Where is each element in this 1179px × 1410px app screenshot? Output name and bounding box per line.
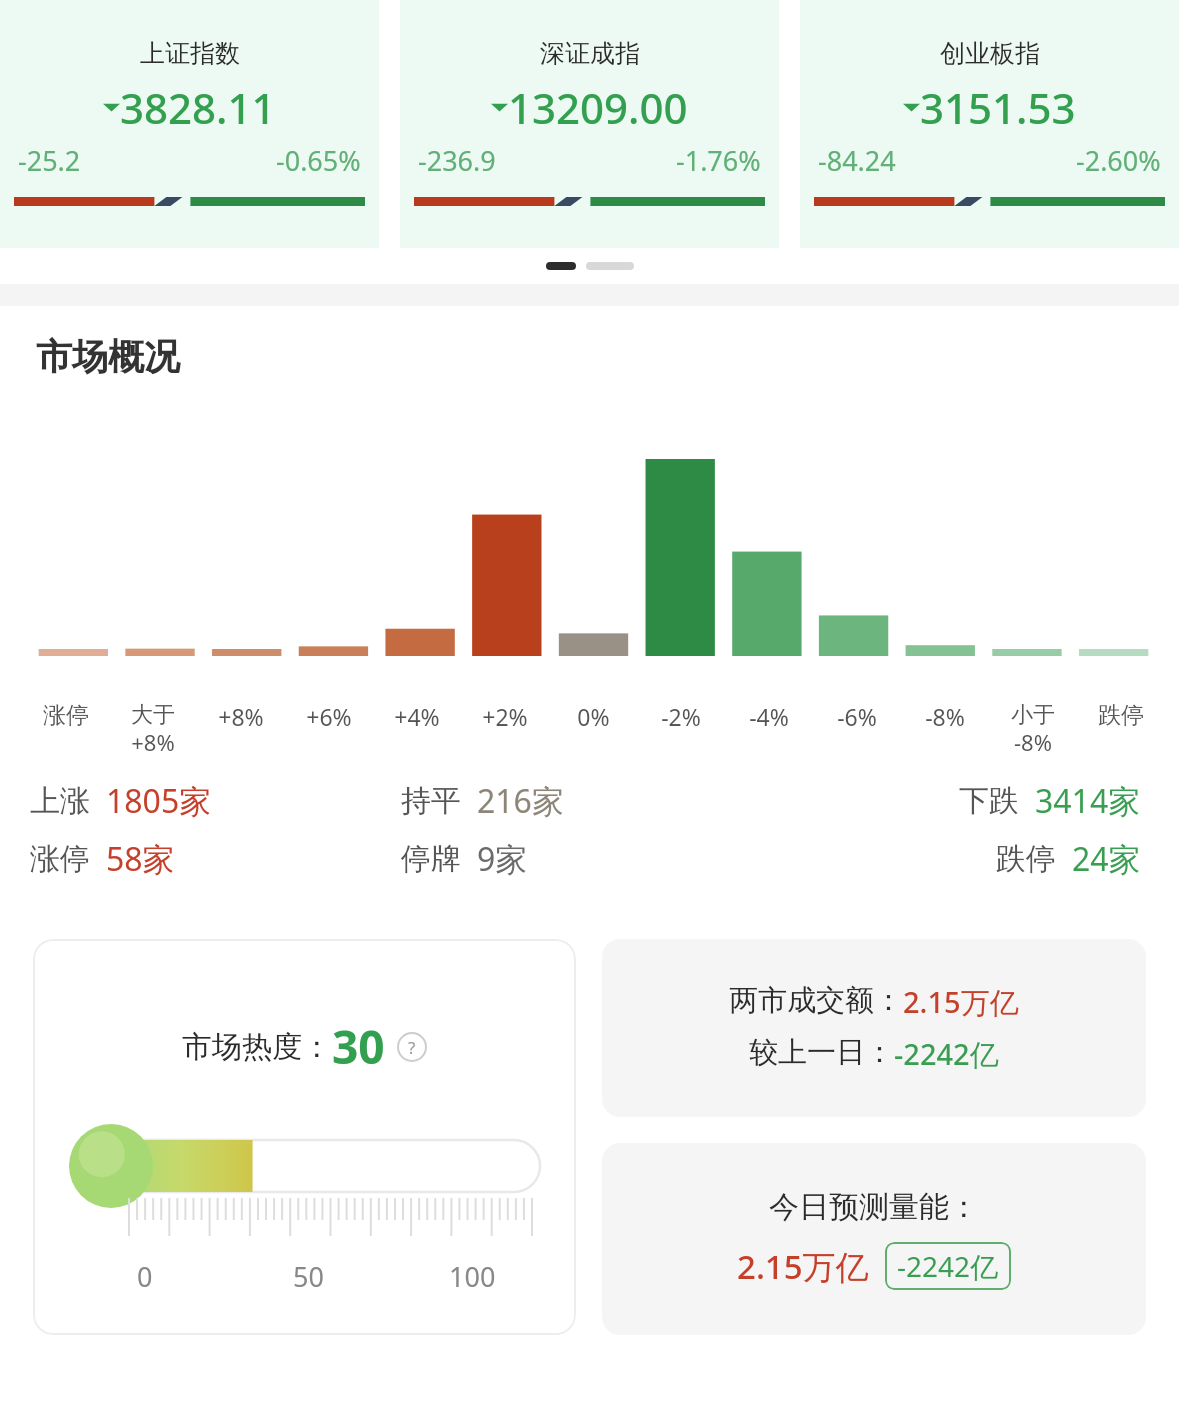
staticText: 停牌: [401, 840, 461, 878]
staticText: 58家: [106, 837, 175, 881]
staticText: 涨停: [30, 840, 90, 878]
staticText: 创业板指: [940, 38, 1040, 69]
staticText: 今日预测量能：: [769, 1188, 979, 1226]
staticText: 1805家: [106, 779, 212, 823]
staticText: 3828.11: [120, 79, 276, 136]
button[interactable]: 上证指数: [0, 0, 379, 248]
staticText: -8%: [925, 701, 965, 732]
staticText: 市场热度：: [182, 1028, 332, 1066]
staticText: -25.2: [18, 142, 81, 179]
staticText: +4%: [394, 701, 440, 732]
staticText: ?: [408, 1036, 416, 1059]
staticText: 跌停: [996, 840, 1056, 878]
staticText: 216家: [477, 779, 564, 823]
staticText: 0%: [577, 701, 610, 732]
staticText: -84.24: [818, 142, 896, 179]
staticText: +2%: [482, 701, 528, 732]
staticText: 两市成交额：: [729, 982, 903, 1019]
staticText: 较上一日：: [749, 1034, 894, 1071]
staticText: 3151.53: [920, 79, 1076, 136]
staticText: 3414家: [1035, 779, 1141, 823]
button[interactable]: 两市成交额：: [602, 939, 1146, 1117]
staticText: 深证成指: [540, 38, 640, 69]
staticText: 50: [293, 1258, 324, 1295]
staticText: -2242亿: [897, 1247, 999, 1285]
staticText: 下跌: [959, 782, 1019, 820]
staticText: -2242亿: [894, 1034, 999, 1074]
button[interactable]: 说明: [397, 1032, 427, 1062]
staticText: -0.65%: [276, 142, 361, 179]
staticText: 100: [449, 1258, 496, 1295]
button[interactable]: 今日预测量能：: [602, 1143, 1146, 1335]
staticText: +6%: [306, 701, 352, 732]
staticText: 跌停: [1098, 701, 1144, 730]
staticText: 上涨: [30, 782, 90, 820]
staticText: 小于 -8%: [1011, 701, 1055, 757]
staticText: -236.9: [418, 142, 496, 179]
staticText: 大于 +8%: [131, 701, 175, 757]
button[interactable]: 创业板指: [800, 0, 1179, 248]
staticText: -6%: [837, 701, 877, 732]
staticText: -1.76%: [676, 142, 761, 179]
staticText: 9家: [477, 837, 528, 881]
staticText: 涨停: [43, 701, 89, 730]
staticText: 24家: [1072, 837, 1141, 881]
staticText: 0: [137, 1258, 153, 1295]
staticText: +8%: [218, 701, 264, 732]
button[interactable]: 市场热度：: [33, 939, 576, 1335]
staticText: 持平: [401, 782, 461, 820]
staticText: -2.60%: [1076, 142, 1161, 179]
staticText: -2%: [661, 701, 701, 732]
staticText: -4%: [749, 701, 789, 732]
staticText: 13209.00: [508, 79, 688, 136]
staticText: 30: [332, 1015, 385, 1078]
staticText: 2.15万亿: [903, 982, 1019, 1022]
staticText: 上证指数: [140, 38, 240, 69]
button[interactable]: 深证成指: [400, 0, 779, 248]
staticText: 市场概况: [36, 334, 180, 379]
staticText: 2.15万亿: [737, 1244, 869, 1289]
